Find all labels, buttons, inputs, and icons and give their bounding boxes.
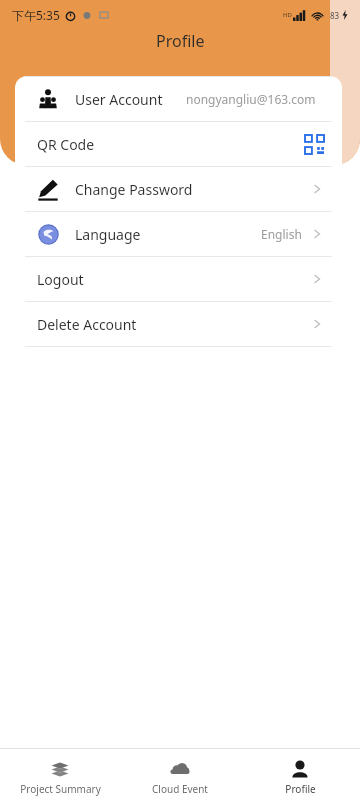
- button[interactable]: Cloud Event: [120, 753, 240, 796]
- staticText: English: [261, 226, 302, 242]
- staticText: Language: [75, 225, 141, 244]
- staticText: Profile: [156, 30, 205, 52]
- staticText: 83: [330, 10, 340, 21]
- button[interactable]: QR Code: [15, 122, 342, 166]
- staticText: QR Code: [37, 135, 95, 154]
- button[interactable]: User Account: [15, 77, 342, 121]
- staticText: Project Summary: [20, 782, 101, 796]
- staticText: Change Password: [75, 180, 193, 199]
- staticText: Logout: [37, 270, 84, 289]
- button[interactable]: Delete Account: [15, 302, 342, 346]
- button[interactable]: Language: [15, 212, 342, 256]
- staticText: User Account: [75, 90, 163, 109]
- staticText: Cloud Event: [152, 782, 208, 796]
- staticText: 下午5:35: [12, 7, 60, 23]
- staticText: Delete Account: [37, 315, 137, 334]
- button[interactable]: Logout: [15, 257, 342, 301]
- button[interactable]: Profile: [240, 753, 360, 796]
- staticText: HD: [283, 11, 292, 19]
- staticText: nongyangliu@163.com: [186, 91, 316, 107]
- button[interactable]: Change Password: [15, 167, 342, 211]
- staticText: Profile: [285, 782, 316, 796]
- button[interactable]: Project Summary: [0, 753, 120, 796]
